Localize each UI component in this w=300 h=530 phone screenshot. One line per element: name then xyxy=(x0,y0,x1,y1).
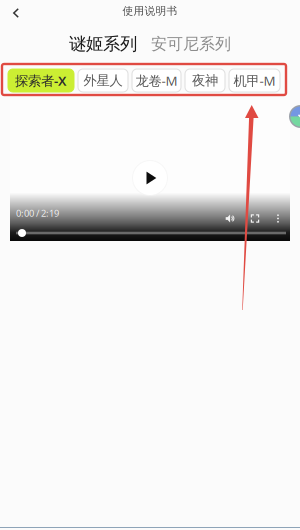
button[interactable]: Play xyxy=(132,160,168,196)
staticText: 机甲-M xyxy=(233,72,275,89)
button[interactable]: 探索者-X xyxy=(8,69,74,92)
button[interactable]: 机甲-M xyxy=(229,69,280,92)
button[interactable]: Browser xyxy=(289,105,300,128)
staticText: 安可尼系列 xyxy=(151,34,231,54)
button[interactable]: 谜姬系列 xyxy=(69,33,137,55)
button[interactable]: Back xyxy=(3,1,29,25)
button[interactable]: More options xyxy=(271,210,285,226)
button[interactable]: 夜神 xyxy=(185,69,225,92)
staticText: 探索者-X xyxy=(15,72,67,89)
button[interactable]: 安可尼系列 xyxy=(151,34,231,54)
staticText: 龙卷-M xyxy=(135,72,177,89)
staticText: 使用说明书 xyxy=(122,4,177,17)
button[interactable]: Mute xyxy=(222,210,238,226)
staticText: 谜姬系列 xyxy=(69,33,137,55)
staticText: 0:00 / 2:19 xyxy=(16,207,59,219)
button[interactable]: 外星人 xyxy=(78,69,128,92)
button[interactable]: 龙卷-M xyxy=(132,69,181,92)
button[interactable]: Full screen xyxy=(247,210,263,226)
staticText: 夜神 xyxy=(192,72,218,89)
staticText: 外星人 xyxy=(83,72,122,89)
